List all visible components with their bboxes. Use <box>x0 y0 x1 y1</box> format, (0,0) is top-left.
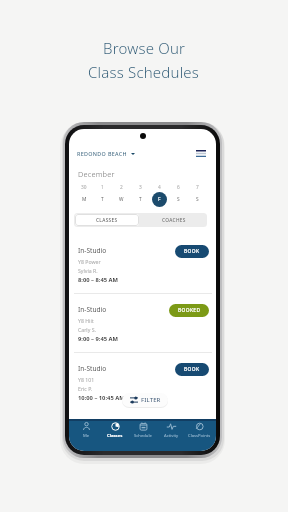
button[interactable]: ClassPoints <box>185 422 213 451</box>
staticText: 9:00 – 9:45 AM <box>78 335 119 343</box>
staticText: 10:00 – 10:45 AM <box>78 394 125 402</box>
staticText: BOOK <box>184 366 200 373</box>
staticText: Me <box>83 433 90 439</box>
button[interactable]: BOOKED <box>169 304 209 317</box>
staticText: 8:00 – 8:45 AM <box>78 276 119 284</box>
staticText: CLASSES <box>96 217 118 224</box>
staticText: December <box>78 169 115 179</box>
staticText: F <box>158 196 161 203</box>
staticText: 2 <box>120 184 123 191</box>
button[interactable]: 1 <box>93 184 112 207</box>
staticText: Y8 Hiit <box>78 317 94 324</box>
button[interactable]: 4 <box>150 184 169 207</box>
staticText: 7 <box>196 184 199 191</box>
staticText: In-Studio <box>78 246 107 255</box>
button[interactable]: COACHES <box>140 213 207 227</box>
staticText: Carly S. <box>78 326 96 333</box>
button[interactable]: 6 <box>169 184 188 207</box>
button[interactable]: 7 <box>188 184 207 207</box>
staticText: Schedule <box>134 433 152 439</box>
staticText: Classes <box>107 433 123 439</box>
staticText: Sylvia R. <box>78 267 98 274</box>
staticText: Browse Our <box>103 38 186 58</box>
button[interactable]: 3 <box>131 184 150 207</box>
staticText: BOOK <box>184 248 200 255</box>
button[interactable]: BOOK <box>175 245 209 258</box>
staticText: 3 <box>139 184 142 191</box>
staticText: S <box>177 196 180 203</box>
staticText: BOOKED <box>178 307 201 314</box>
staticText: Y8 Power <box>78 258 101 265</box>
button[interactable]: Classes <box>101 422 129 451</box>
button[interactable]: REDONDO BEACH <box>77 150 135 157</box>
button[interactable]: Activity <box>157 422 185 451</box>
staticText: In-Studio <box>78 305 107 314</box>
staticText: COACHES <box>162 217 186 224</box>
staticText: S <box>196 196 199 203</box>
staticText: In-Studio <box>78 364 107 373</box>
staticText: T <box>101 196 104 203</box>
staticText: Eric P. <box>78 385 93 392</box>
button[interactable]: Me <box>72 422 101 451</box>
staticText: 1 <box>101 184 104 191</box>
button[interactable]: BOOK <box>175 363 209 376</box>
staticText: W <box>119 196 124 203</box>
staticText: Y8 101 <box>78 376 95 383</box>
button[interactable]: 2 <box>112 184 131 207</box>
staticText: Class Schedules <box>88 62 200 82</box>
staticText: Activity <box>164 433 179 439</box>
staticText: REDONDO BEACH <box>77 150 127 157</box>
button[interactable]: CLASSES <box>75 214 139 226</box>
staticText: 6 <box>177 184 180 191</box>
staticText: 4 <box>158 184 161 191</box>
staticText: FILTER <box>141 396 161 404</box>
staticText: 30 <box>81 184 87 191</box>
staticText: T <box>139 196 142 203</box>
staticText: M <box>82 196 87 203</box>
button[interactable]: FILTER <box>122 393 168 407</box>
button[interactable]: Schedule <box>129 422 157 451</box>
button[interactable]: 30 <box>75 184 93 207</box>
button[interactable]: Open menu <box>194 147 207 160</box>
staticText: ClassPoints <box>188 433 211 439</box>
